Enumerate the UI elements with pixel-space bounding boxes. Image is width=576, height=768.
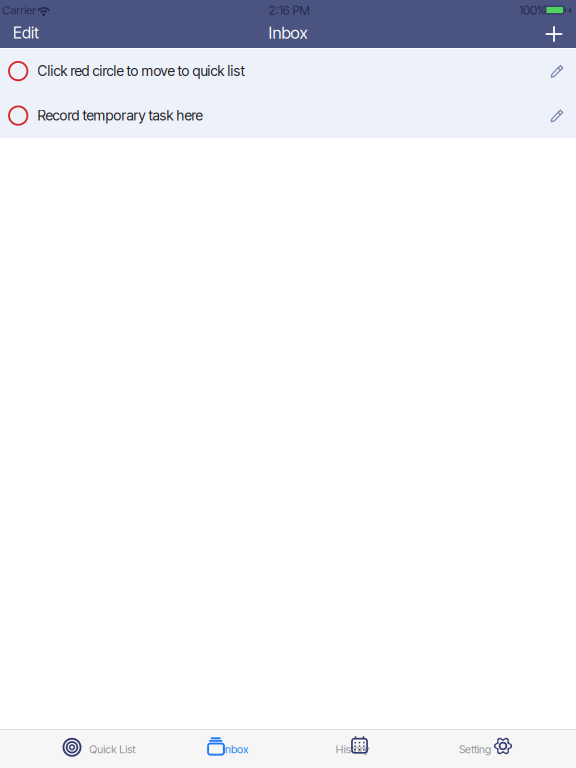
button[interactable]: Add bbox=[532, 20, 576, 48]
button[interactable]: History bbox=[288, 730, 432, 768]
staticText: Record temporary task here bbox=[37, 107, 202, 124]
staticText: Edit bbox=[13, 23, 39, 42]
staticText: Setting bbox=[459, 743, 491, 756]
button[interactable]: Edit bbox=[0, 19, 53, 47]
button[interactable]: Quick List bbox=[0, 730, 144, 768]
button[interactable]: Setting bbox=[432, 730, 576, 768]
staticText: 2:16 PM bbox=[268, 3, 309, 18]
staticText: Carrier bbox=[2, 3, 36, 17]
staticText: Quick List bbox=[89, 743, 135, 756]
staticText: Inbox bbox=[268, 22, 307, 43]
staticText: History bbox=[336, 743, 370, 756]
button[interactable]: Record temporary task here bbox=[0, 93, 576, 138]
button[interactable]: Click red circle to move to quick list bbox=[0, 49, 576, 93]
staticText: Inbox bbox=[223, 743, 248, 756]
staticText: 100% bbox=[519, 3, 546, 18]
button[interactable]: Inbox bbox=[144, 730, 288, 768]
staticText: Click red circle to move to quick list bbox=[37, 62, 244, 79]
